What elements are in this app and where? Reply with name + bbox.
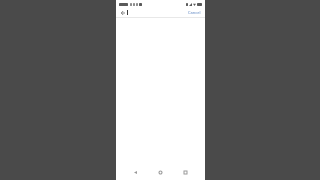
button[interactable]: Recent apps — [180, 167, 191, 178]
button[interactable]: Cancel — [187, 10, 202, 15]
button[interactable]: Home — [155, 167, 166, 178]
staticText: Cancel — [188, 10, 201, 15]
button[interactable] — [127, 8, 187, 17]
button[interactable]: Back — [119, 9, 126, 16]
button[interactable]: Back — [130, 167, 141, 178]
